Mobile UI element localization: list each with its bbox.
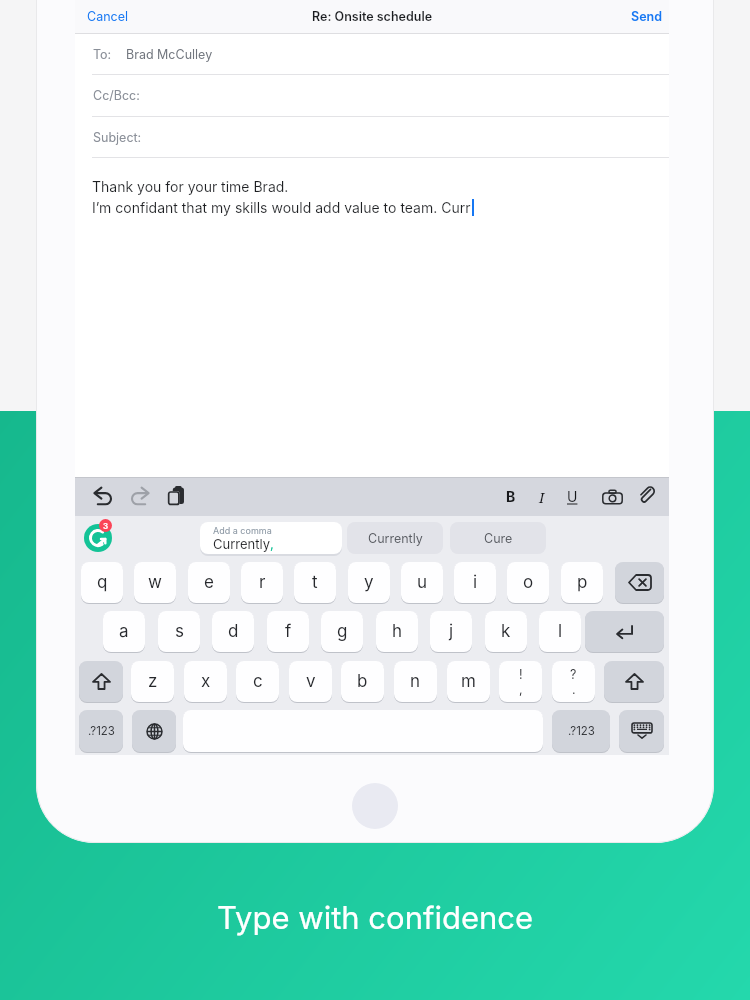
- button[interactable]: I: [531, 477, 553, 516]
- staticText: m: [461, 671, 476, 692]
- staticText: I: [539, 487, 545, 507]
- staticText: e: [204, 572, 214, 593]
- button[interactable]: [130, 488, 150, 505]
- staticText: !: [519, 667, 523, 682]
- button[interactable]: .?123: [552, 710, 610, 752]
- staticText: Currently: [213, 536, 270, 552]
- staticText: v: [306, 671, 316, 692]
- button[interactable]: Currently: [347, 522, 443, 554]
- staticText: B: [506, 488, 516, 505]
- staticText: Cc/Bcc:: [93, 88, 140, 103]
- button[interactable]: c: [236, 661, 279, 702]
- staticText: n: [410, 671, 421, 692]
- button[interactable]: j: [430, 611, 472, 652]
- staticText: a: [119, 621, 129, 642]
- staticText: w: [148, 572, 162, 593]
- button[interactable]: ?: [552, 661, 595, 702]
- staticText: U: [567, 488, 578, 505]
- button[interactable]: n: [394, 661, 437, 702]
- staticText: l: [558, 621, 563, 642]
- staticText: ?: [570, 667, 577, 682]
- staticText: z: [148, 671, 158, 692]
- staticText: s: [175, 621, 184, 642]
- button[interactable]: Cancel: [87, 0, 167, 33]
- button[interactable]: [615, 562, 664, 603]
- staticText: Currently: [368, 531, 423, 546]
- button[interactable]: m: [447, 661, 490, 702]
- button[interactable]: e: [188, 562, 230, 603]
- button[interactable]: [604, 661, 664, 702]
- button[interactable]: y: [348, 562, 390, 603]
- button[interactable]: i: [454, 562, 496, 603]
- button[interactable]: q: [81, 562, 123, 603]
- button[interactable]: [84, 524, 112, 552]
- staticText: j: [449, 621, 454, 642]
- button[interactable]: [168, 486, 185, 506]
- button[interactable]: z: [131, 661, 174, 702]
- staticText: Add a comma: [213, 525, 272, 536]
- button[interactable]: [585, 611, 664, 652]
- staticText: .?123: [568, 724, 595, 738]
- button[interactable]: b: [341, 661, 384, 702]
- button[interactable]: w: [134, 562, 176, 603]
- staticText: b: [357, 671, 368, 692]
- button[interactable]: [637, 486, 657, 507]
- staticText: f: [285, 621, 292, 642]
- button[interactable]: l: [539, 611, 581, 652]
- button[interactable]: t: [294, 562, 336, 603]
- staticText: Re: Onsite schedule: [312, 9, 433, 24]
- button[interactable]: a: [103, 611, 145, 652]
- staticText: k: [501, 621, 511, 642]
- staticText: y: [364, 572, 374, 593]
- button[interactable]: h: [376, 611, 418, 652]
- staticText: q: [97, 572, 108, 593]
- button[interactable]: Cure: [450, 522, 546, 554]
- button[interactable]: r: [241, 562, 283, 603]
- button[interactable]: .?123: [79, 710, 123, 752]
- staticText: o: [523, 572, 534, 593]
- staticText: c: [253, 671, 263, 692]
- button[interactable]: [619, 710, 664, 752]
- staticText: Cancel: [87, 9, 128, 24]
- button[interactable]: B: [500, 477, 522, 516]
- button[interactable]: Add a comma: [200, 522, 342, 554]
- button[interactable]: d: [212, 611, 254, 652]
- staticText: i: [473, 572, 478, 593]
- button[interactable]: [602, 490, 623, 505]
- button[interactable]: Send: [589, 0, 662, 33]
- staticText: 3: [103, 521, 109, 531]
- staticText: .?123: [88, 724, 115, 738]
- button[interactable]: o: [507, 562, 549, 603]
- staticText: d: [228, 621, 239, 642]
- staticText: h: [392, 621, 403, 642]
- button[interactable]: [79, 661, 123, 702]
- staticText: Type with confidence: [217, 899, 534, 937]
- button[interactable]: !: [499, 661, 542, 702]
- button[interactable]: s: [158, 611, 200, 652]
- button[interactable]: [93, 488, 113, 505]
- button[interactable]: g: [321, 611, 363, 652]
- button[interactable]: p: [561, 562, 603, 603]
- staticText: Send: [631, 9, 662, 24]
- staticText: .: [572, 682, 576, 697]
- staticText: Cure: [484, 531, 513, 546]
- button[interactable]: x: [184, 661, 227, 702]
- staticText: g: [337, 621, 348, 642]
- button[interactable]: v: [289, 661, 332, 702]
- staticText: x: [201, 671, 211, 692]
- button[interactable]: [132, 710, 176, 752]
- button[interactable]: u: [401, 562, 443, 603]
- button[interactable]: U: [561, 477, 583, 516]
- staticText: I’m confidant that my skills would add v…: [92, 199, 471, 216]
- button[interactable]: [352, 783, 398, 829]
- button[interactable]: k: [485, 611, 527, 652]
- staticText: ,: [519, 682, 523, 697]
- staticText: Thank you for your time Brad.: [92, 178, 289, 195]
- staticText: t: [312, 572, 318, 593]
- staticText: To:: [93, 47, 112, 62]
- staticText: Brad McCulley: [126, 47, 213, 62]
- staticText: Subject:: [93, 130, 142, 145]
- button[interactable]: f: [267, 611, 309, 652]
- staticText: r: [259, 572, 266, 593]
